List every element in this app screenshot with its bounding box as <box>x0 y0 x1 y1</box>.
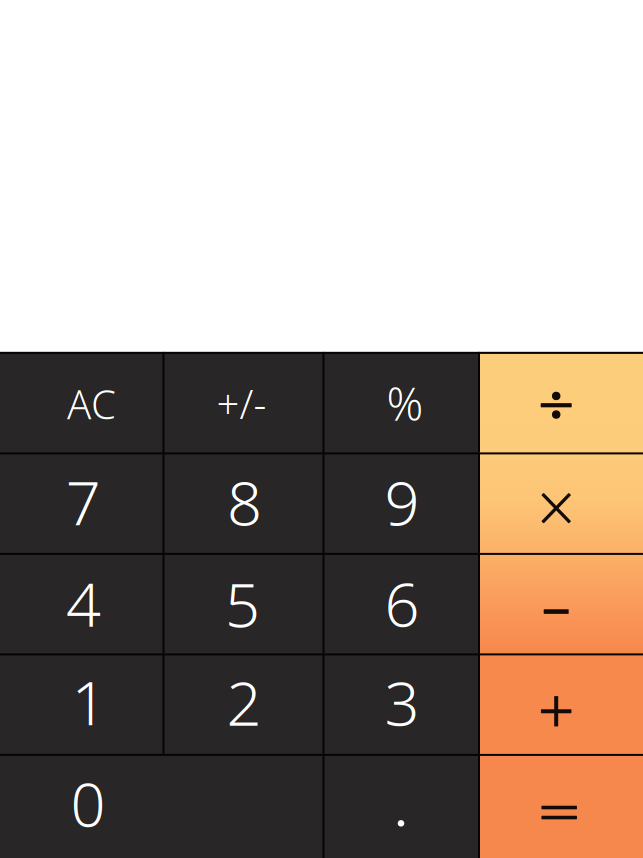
staticText: 7 <box>66 461 101 542</box>
button[interactable]: 0 <box>0 754 323 858</box>
staticText: % <box>386 373 423 433</box>
staticText: 1 <box>72 661 107 742</box>
button[interactable]: 5 <box>163 553 323 653</box>
button[interactable]: 2 <box>163 653 323 754</box>
staticText: 2 <box>226 661 261 742</box>
button[interactable]: 7 <box>0 452 163 553</box>
button[interactable]: Minus <box>479 553 643 653</box>
staticText: AC <box>67 377 116 430</box>
button[interactable]: Multiply <box>479 452 643 553</box>
button[interactable]: 3 <box>323 653 479 754</box>
staticText: 6 <box>384 562 419 643</box>
button[interactable]: 9 <box>323 452 479 553</box>
button[interactable]: Equals <box>479 754 643 858</box>
button[interactable]: Plus <box>479 653 643 754</box>
staticText: 3 <box>384 661 419 742</box>
staticText: 9 <box>384 461 419 542</box>
button[interactable]: Decimal point <box>323 754 479 858</box>
staticText: 4 <box>66 562 101 643</box>
button[interactable]: 1 <box>0 653 163 754</box>
staticText: 5 <box>225 563 260 644</box>
staticText: 8 <box>227 461 262 542</box>
button[interactable]: 6 <box>323 553 479 653</box>
button[interactable]: Percent <box>323 352 479 452</box>
button[interactable]: 4 <box>0 553 163 653</box>
button[interactable]: Plus minus <box>163 352 323 452</box>
staticText: +/- <box>216 377 266 430</box>
button[interactable]: 8 <box>163 452 323 553</box>
button[interactable]: AC <box>0 352 163 452</box>
staticText: 0 <box>71 762 106 844</box>
button[interactable]: Divide <box>479 352 643 452</box>
